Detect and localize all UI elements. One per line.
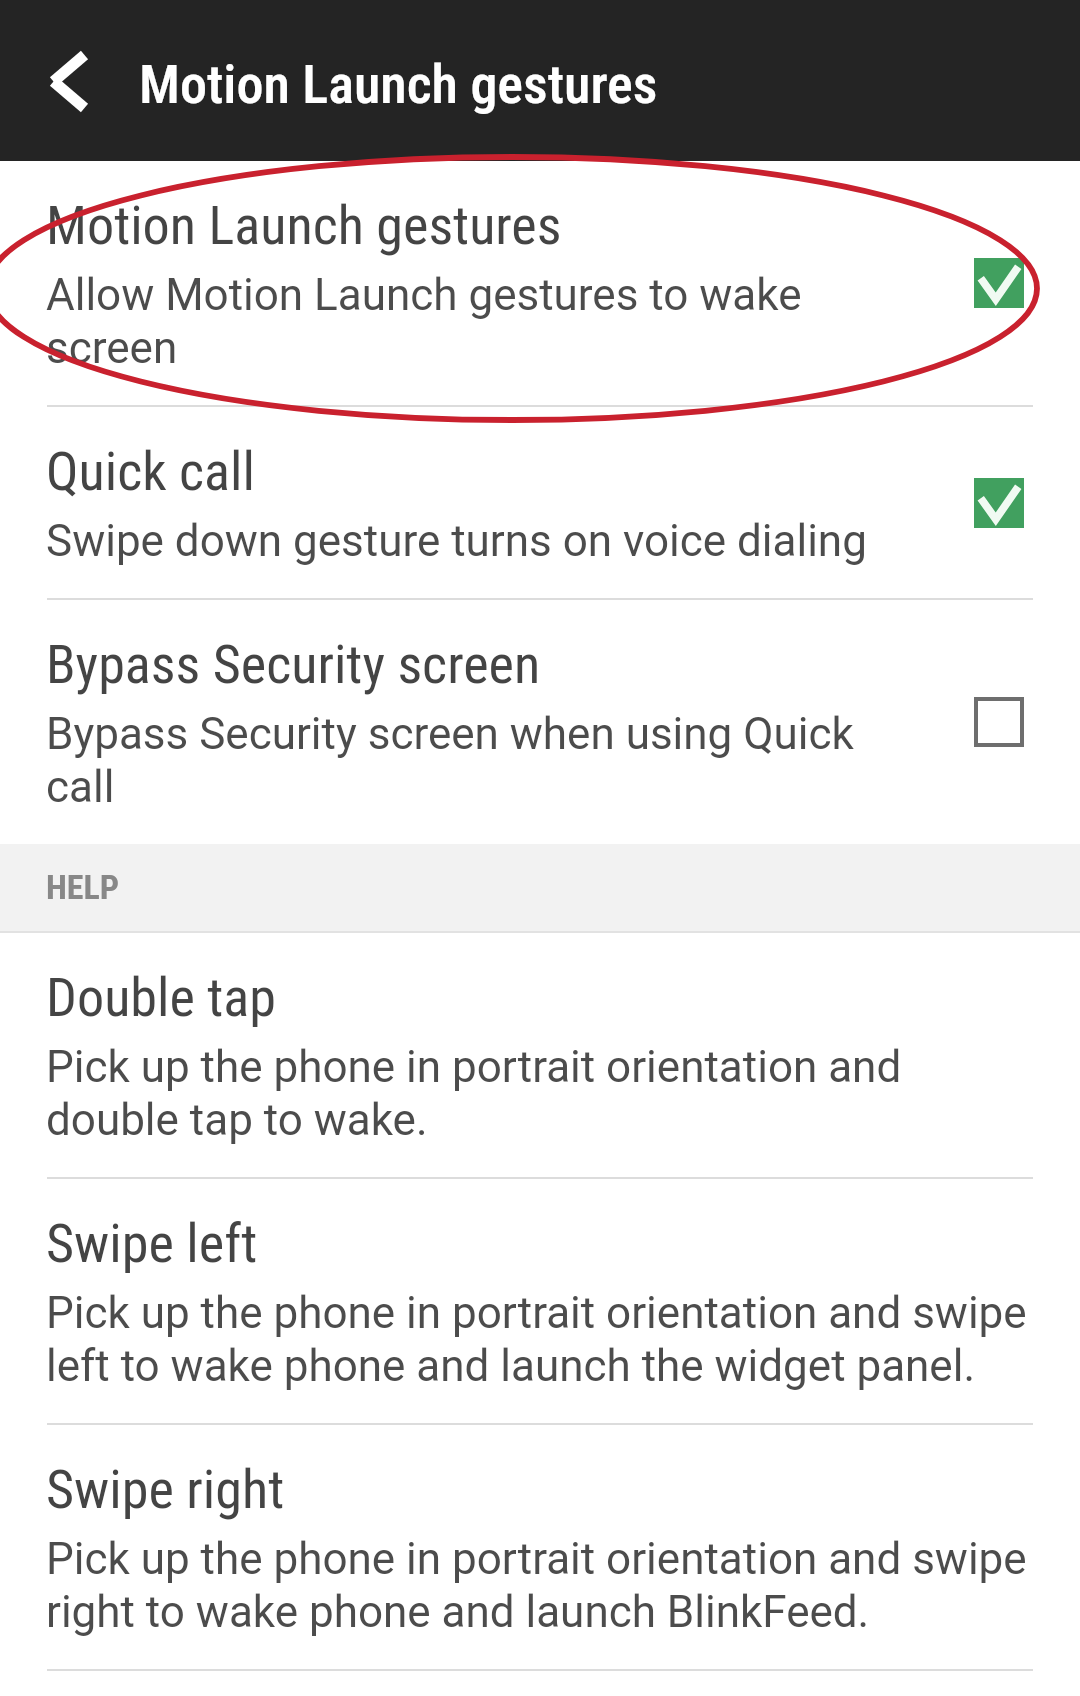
button[interactable]: Disabled	[974, 697, 1024, 747]
button[interactable]: Bypass Security screen	[0, 600, 1080, 844]
staticText: HELP	[46, 867, 120, 907]
staticText: Allow Motion Launch gestures to wake scr…	[46, 269, 906, 374]
button[interactable]: Swipe right	[0, 1425, 1080, 1669]
button[interactable]: Swipe left	[0, 1179, 1080, 1423]
button[interactable]: Navigate up	[4, 21, 124, 141]
staticText: Swipe right	[46, 1458, 285, 1522]
staticText: Swipe down gesture turns on voice dialin…	[46, 515, 867, 567]
staticText: Pick up the phone in portrait orientatio…	[46, 1533, 1033, 1638]
staticText: Motion Launch gestures	[46, 194, 562, 258]
staticText: Bypass Security screen when using Quick …	[46, 708, 906, 813]
staticText: Pick up the phone in portrait orientatio…	[46, 1287, 1033, 1392]
staticText: Swipe left	[46, 1212, 258, 1276]
button[interactable]: Enabled	[974, 478, 1024, 528]
button[interactable]: Quick call	[0, 407, 1080, 598]
staticText: Double tap	[46, 966, 277, 1030]
staticText: Bypass Security screen	[46, 633, 541, 697]
button[interactable]: Enabled	[974, 258, 1024, 308]
staticText: Quick call	[46, 440, 255, 504]
button[interactable]: Motion Launch gestures	[0, 161, 1080, 405]
staticText: Motion Launch gestures	[139, 53, 658, 116]
button[interactable]: Double tap	[0, 933, 1080, 1177]
staticText: Pick up the phone in portrait orientatio…	[46, 1041, 1033, 1146]
